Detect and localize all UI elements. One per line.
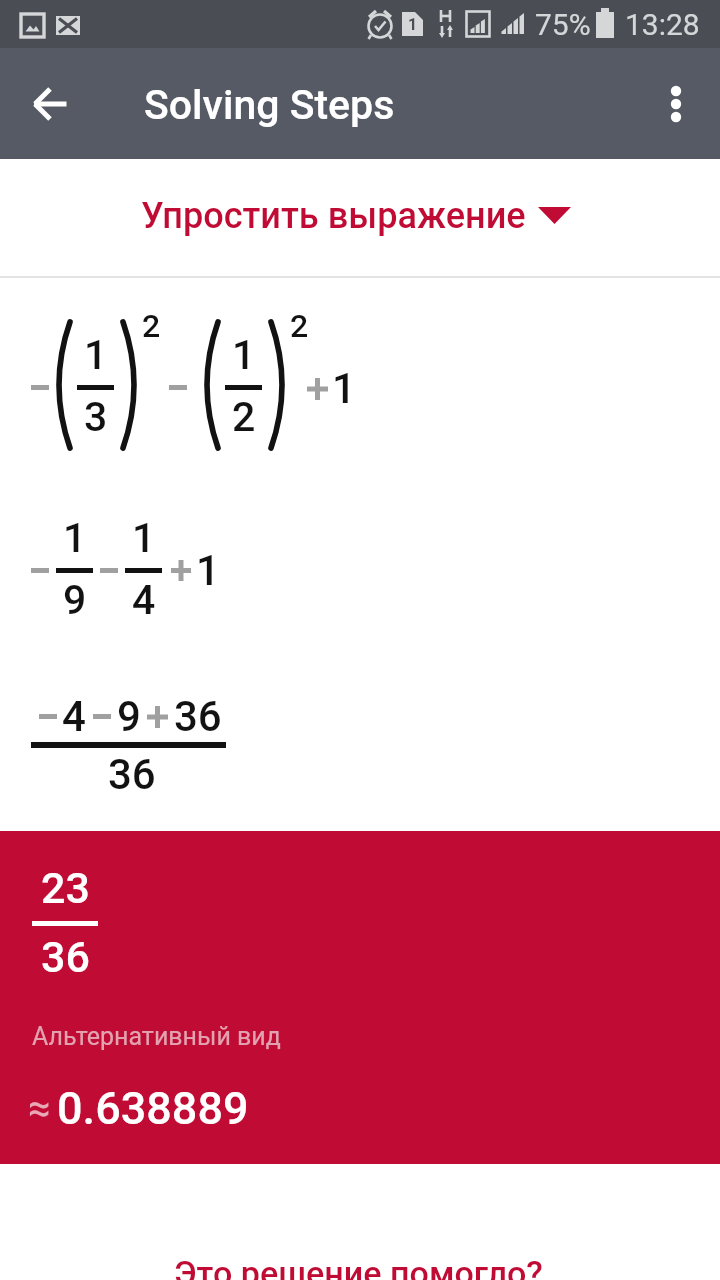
staticText: 36 [108, 750, 156, 799]
staticText: 23 [41, 863, 90, 913]
staticText: 75% [535, 7, 591, 42]
staticText: 1 [63, 514, 87, 562]
staticText: 4 [62, 692, 86, 741]
staticText: 2 [290, 307, 309, 345]
staticText: Solving Steps [144, 81, 395, 129]
staticText: 9 [117, 692, 141, 741]
button[interactable]: Step 1 [0, 278, 720, 468]
staticText: 13:28 [625, 7, 700, 42]
staticText: 1 [332, 364, 356, 413]
staticText: 3 [84, 393, 108, 441]
staticText: ≈ [28, 1085, 51, 1132]
staticText: 1 [408, 15, 418, 34]
staticText: 1 [132, 514, 156, 562]
staticText: 36 [41, 932, 90, 982]
button[interactable]: Back [16, 70, 84, 138]
button[interactable]: Упростить выражение [0, 159, 720, 277]
staticText: 2 [142, 307, 161, 345]
staticText: 4 [132, 576, 156, 624]
staticText: 2 [232, 393, 256, 441]
staticText: 1 [84, 331, 108, 379]
button[interactable]: More options [642, 70, 710, 138]
button[interactable]: Step 3 [0, 644, 720, 831]
staticText: 9 [63, 576, 87, 624]
button[interactable]: Step 2 [0, 468, 720, 644]
staticText: 0.638889 [57, 1082, 249, 1135]
staticText: 1 [196, 546, 220, 595]
staticText: 1 [232, 331, 256, 379]
button[interactable]: Это решение помогло? [0, 1245, 720, 1280]
staticText: Упростить выражение [141, 195, 526, 237]
staticText: Альтернативный вид [32, 1022, 281, 1051]
staticText: 36 [174, 692, 222, 741]
staticText: Это решение помогло? [174, 1253, 543, 1280]
